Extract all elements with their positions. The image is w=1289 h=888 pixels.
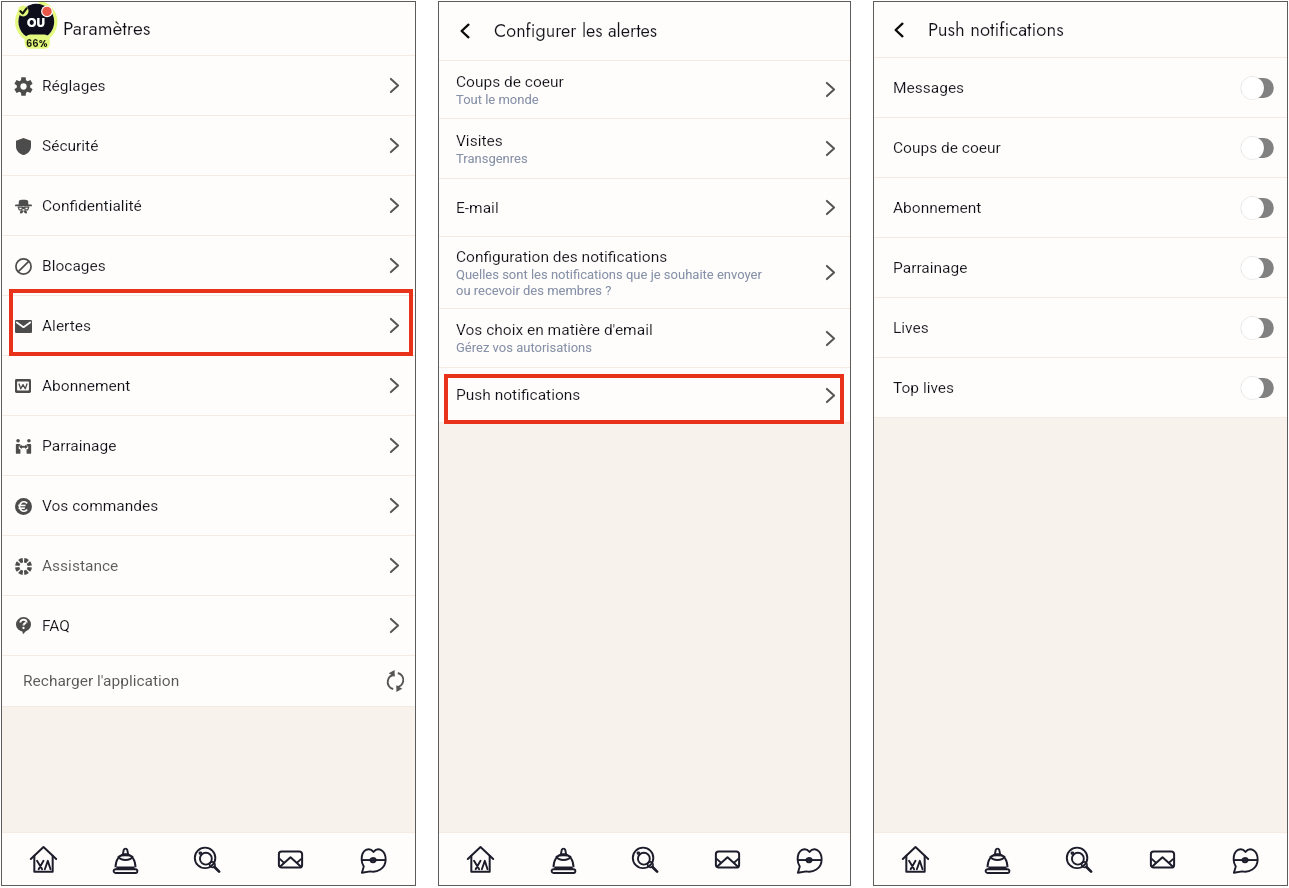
staticText: Parrainage xyxy=(893,259,968,277)
button[interactable]: Chat xyxy=(1204,833,1287,885)
button[interactable]: Search xyxy=(604,833,686,885)
staticText: Vos commandes xyxy=(42,497,159,515)
button[interactable]: Toggle Lives xyxy=(1241,315,1274,341)
staticText: Configurer les alertes xyxy=(494,18,658,44)
button[interactable]: Messages xyxy=(686,833,768,885)
staticText: Visites xyxy=(456,132,503,150)
staticText: Réglages xyxy=(42,77,106,95)
button[interactable]: Configuration des notifications xyxy=(439,237,850,308)
button[interactable]: Réglages xyxy=(2,56,415,115)
staticText: Coups de coeur xyxy=(456,73,564,91)
staticText: Top lives xyxy=(893,379,955,397)
button[interactable]: Notifications xyxy=(956,833,1038,885)
button[interactable]: Chat xyxy=(768,833,850,885)
button[interactable]: Sécurité xyxy=(2,116,415,175)
staticText: Configuration des notifications xyxy=(456,248,668,266)
button[interactable]: Recharger l'application xyxy=(2,656,415,706)
button[interactable]: Toggle Messages xyxy=(1241,75,1274,101)
staticText: Abonnement xyxy=(42,377,131,395)
button[interactable]: Parrainage xyxy=(874,238,1287,297)
button[interactable]: Chat xyxy=(332,833,415,885)
button[interactable]: Parrainage xyxy=(2,416,415,475)
button[interactable]: Profile xyxy=(10,2,55,55)
button[interactable]: Toggle Top lives xyxy=(1241,375,1274,401)
staticText: Abonnement xyxy=(893,199,982,217)
button[interactable]: Blocages xyxy=(2,236,415,295)
staticText: Parrainage xyxy=(42,437,117,455)
staticText: Gérez vos autorisations xyxy=(456,340,776,355)
staticText: E-mail xyxy=(456,199,499,217)
button[interactable]: Toggle Parrainage xyxy=(1241,255,1274,281)
button[interactable]: E-mail xyxy=(439,179,850,236)
staticText: FAQ xyxy=(42,617,70,635)
button[interactable]: Messages xyxy=(874,58,1287,117)
button[interactable]: Home xyxy=(874,833,956,885)
button[interactable]: Assistance xyxy=(2,536,415,595)
button[interactable]: Messages xyxy=(1121,833,1204,885)
button[interactable]: Alertes xyxy=(2,296,415,355)
staticText: Messages xyxy=(893,79,965,97)
button[interactable]: Search xyxy=(166,833,249,885)
button[interactable]: Messages xyxy=(249,833,332,885)
staticText: Push notifications xyxy=(928,16,1064,43)
staticText: Sécurité xyxy=(42,137,99,155)
staticText: Blocages xyxy=(42,257,106,275)
staticText: Tout le monde xyxy=(456,92,776,107)
button[interactable]: Visites xyxy=(439,119,850,178)
button[interactable]: Abonnement xyxy=(2,356,415,415)
staticText: Alertes xyxy=(42,317,92,335)
staticText: Confidentialité xyxy=(42,197,142,215)
button[interactable]: Vos choix en matière d'email xyxy=(439,309,850,367)
button[interactable]: Notifications xyxy=(84,833,166,885)
staticText: Transgenres xyxy=(456,151,776,166)
staticText: Recharger l'application xyxy=(23,672,180,690)
button[interactable]: Abonnement xyxy=(874,178,1287,237)
button[interactable]: Lives xyxy=(874,298,1287,357)
staticText: Lives xyxy=(893,319,929,337)
button[interactable]: Toggle Abonnement xyxy=(1241,195,1274,221)
button[interactable]: Coups de coeur xyxy=(874,118,1287,177)
button[interactable]: Confidentialité xyxy=(2,176,415,235)
button[interactable]: Push notifications xyxy=(439,368,850,422)
button[interactable]: Top lives xyxy=(874,358,1287,417)
button[interactable]: Search xyxy=(1038,833,1121,885)
staticText: 66% xyxy=(26,36,48,50)
button[interactable]: Coups de coeur xyxy=(439,61,850,118)
button[interactable]: Back xyxy=(453,19,477,43)
staticText: OU xyxy=(27,14,45,31)
staticText: Push notifications xyxy=(456,386,581,404)
button[interactable]: FAQ xyxy=(2,596,415,655)
button[interactable]: Home xyxy=(439,833,522,885)
staticText: Vos choix en matière d'email xyxy=(456,321,653,339)
staticText: Assistance xyxy=(42,557,119,575)
staticText: Coups de coeur xyxy=(893,139,1001,157)
button[interactable]: Notifications xyxy=(522,833,604,885)
staticText: Paramètres xyxy=(63,15,151,42)
button[interactable]: Toggle Coups de coeur xyxy=(1241,135,1274,161)
button[interactable]: Vos commandes xyxy=(2,476,415,535)
staticText: Quelles sont les notifications que je so… xyxy=(456,267,776,298)
button[interactable]: Back xyxy=(887,18,911,42)
button[interactable]: Home xyxy=(2,833,84,885)
